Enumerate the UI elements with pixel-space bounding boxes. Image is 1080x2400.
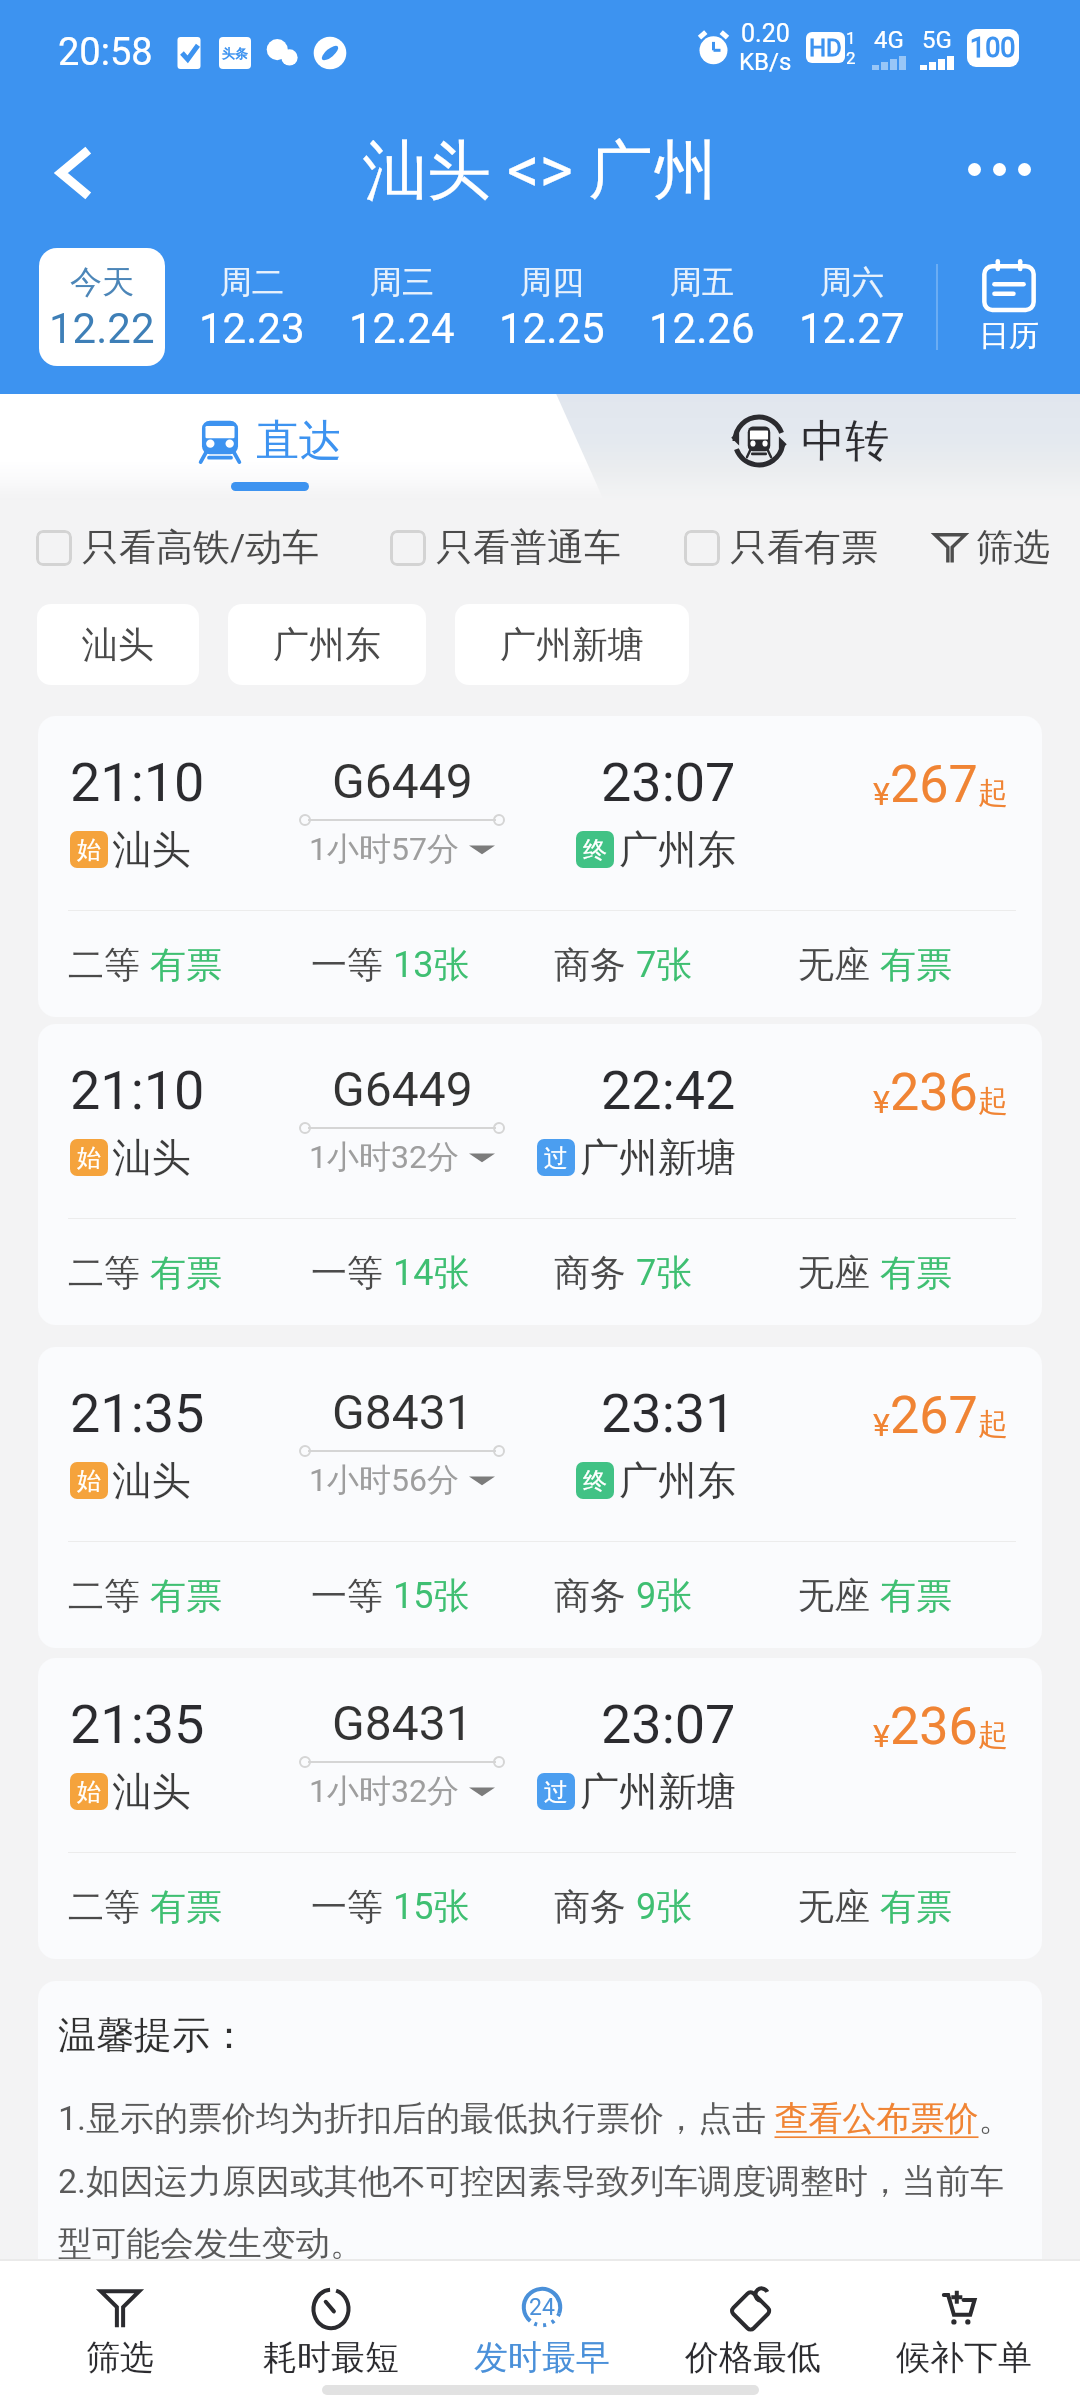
staticText: 1小时32分 <box>309 1137 459 1177</box>
staticText: 22:42 <box>601 1059 736 1122</box>
staticText: 起 <box>978 1716 1008 1754</box>
staticText: 周五 <box>670 262 734 302</box>
staticText: 周六 <box>820 262 884 302</box>
staticText: 267 <box>890 1385 978 1446</box>
staticText: 1小时56分 <box>309 1460 459 1500</box>
button[interactable]: 汕头 <box>37 604 199 685</box>
button[interactable]: 21:35 <box>38 1347 1042 1648</box>
button[interactable]: 21:10 <box>38 1024 1042 1325</box>
button[interactable]: 周二 <box>189 248 315 366</box>
button[interactable]: 21:10 <box>38 716 1042 1017</box>
button[interactable]: 周六 <box>789 248 915 366</box>
staticText: 12.23 <box>199 304 305 353</box>
staticText: 236 <box>890 1062 978 1123</box>
staticText: 无座 <box>798 1573 870 1618</box>
button[interactable]: Back <box>26 128 116 218</box>
staticText: 100 <box>970 32 1016 64</box>
staticText: 二等 <box>68 1884 140 1929</box>
staticText: 无座 <box>798 1884 870 1929</box>
staticText: 7张 <box>636 1250 693 1295</box>
staticText: 始 <box>77 1466 101 1496</box>
staticText: 12.27 <box>799 304 905 353</box>
staticText: 23:07 <box>601 1693 736 1756</box>
staticText: 21:10 <box>70 751 205 814</box>
staticText: 有票 <box>150 1250 222 1295</box>
button[interactable]: 直达 <box>0 394 540 500</box>
button[interactable]: 筛选 <box>932 524 1050 571</box>
staticText: KB/s <box>739 48 792 76</box>
staticText: 直达 <box>256 414 342 468</box>
button[interactable]: 筛选 <box>14 2261 225 2385</box>
staticText: 267 <box>890 754 978 815</box>
staticText: 有票 <box>150 942 222 987</box>
staticText: 广州东 <box>273 622 381 667</box>
staticText: 起 <box>978 774 1008 812</box>
staticText: 24 <box>529 2294 555 2321</box>
staticText: 2 <box>846 48 856 68</box>
staticText: 只看有票 <box>730 524 878 571</box>
button[interactable]: 只看普通车 <box>390 524 621 571</box>
staticText: 头条 <box>222 45 248 61</box>
button[interactable]: 周三 <box>339 248 465 366</box>
staticText: G8431 <box>332 1695 473 1751</box>
button[interactable]: 价格最低 <box>647 2261 858 2385</box>
staticText: 有票 <box>880 1573 952 1618</box>
button[interactable]: 广州新塘 <box>455 604 689 685</box>
staticText: 日历 <box>979 317 1039 355</box>
staticText: 过 <box>544 1777 568 1807</box>
staticText: 二等 <box>68 942 140 987</box>
staticText: 4G <box>874 26 904 54</box>
staticText: 9张 <box>636 1884 693 1929</box>
button[interactable]: 候补下单 <box>858 2261 1069 2385</box>
button[interactable]: Calendar <box>938 248 1080 366</box>
staticText: 236 <box>890 1696 978 1757</box>
staticText: 13张 <box>393 942 470 987</box>
button[interactable]: 21:35 <box>38 1658 1042 1959</box>
staticText: 5G <box>922 26 952 54</box>
button[interactable]: 耗时最短 <box>225 2261 436 2385</box>
staticText: 无座 <box>798 1250 870 1295</box>
button[interactable]: 只看有票 <box>684 524 878 571</box>
staticText: 有票 <box>880 942 952 987</box>
button[interactable]: 周五 <box>639 248 765 366</box>
staticText: 商务 <box>554 1884 626 1929</box>
staticText: 耗时最短 <box>263 2336 399 2379</box>
staticText: 有票 <box>880 1250 952 1295</box>
staticText: 12.24 <box>349 304 455 353</box>
button[interactable]: More options <box>954 124 1044 214</box>
staticText: 7张 <box>636 942 693 987</box>
button[interactable]: 今天 <box>39 248 165 366</box>
button[interactable]: 周四 <box>489 248 615 366</box>
staticText: ¥ <box>873 1717 890 1755</box>
staticText: 一等 <box>311 1573 383 1618</box>
staticText: 汕头 <box>113 1767 191 1816</box>
staticText: 20:58 <box>58 30 153 75</box>
staticText: 15张 <box>393 1573 470 1618</box>
button[interactable]: 中转 <box>540 394 1080 500</box>
staticText: HD <box>809 34 842 62</box>
staticText: 12.25 <box>499 304 605 353</box>
staticText: 23:07 <box>601 751 736 814</box>
staticText: 广州新塘 <box>580 1133 736 1182</box>
staticText: 一等 <box>311 1250 383 1295</box>
staticText: 起 <box>978 1082 1008 1120</box>
staticText: 商务 <box>554 1250 626 1295</box>
staticText: 商务 <box>554 1573 626 1618</box>
staticText: 1 <box>846 28 856 48</box>
button[interactable]: 广州东 <box>228 604 426 685</box>
staticText: 一等 <box>311 942 383 987</box>
staticText: 只看高铁/动车 <box>82 524 320 571</box>
staticText: 广州东 <box>619 825 736 874</box>
staticText: 1.显示的票价均为折扣后的最低执行票价，点击 查看公布票价。 2.如因运力原因或… <box>58 2097 1022 2265</box>
staticText: 终 <box>583 1466 607 1496</box>
staticText: 始 <box>77 835 101 865</box>
staticText: G6449 <box>332 753 473 809</box>
staticText: 二等 <box>68 1573 140 1618</box>
staticText: 过 <box>544 1143 568 1173</box>
button[interactable]: 24 <box>436 2261 647 2385</box>
staticText: 二等 <box>68 1250 140 1295</box>
button[interactable]: 只看高铁/动车 <box>36 524 320 571</box>
staticText: ¥ <box>873 1083 890 1121</box>
staticText: 1小时32分 <box>309 1771 459 1811</box>
staticText: 无座 <box>798 942 870 987</box>
